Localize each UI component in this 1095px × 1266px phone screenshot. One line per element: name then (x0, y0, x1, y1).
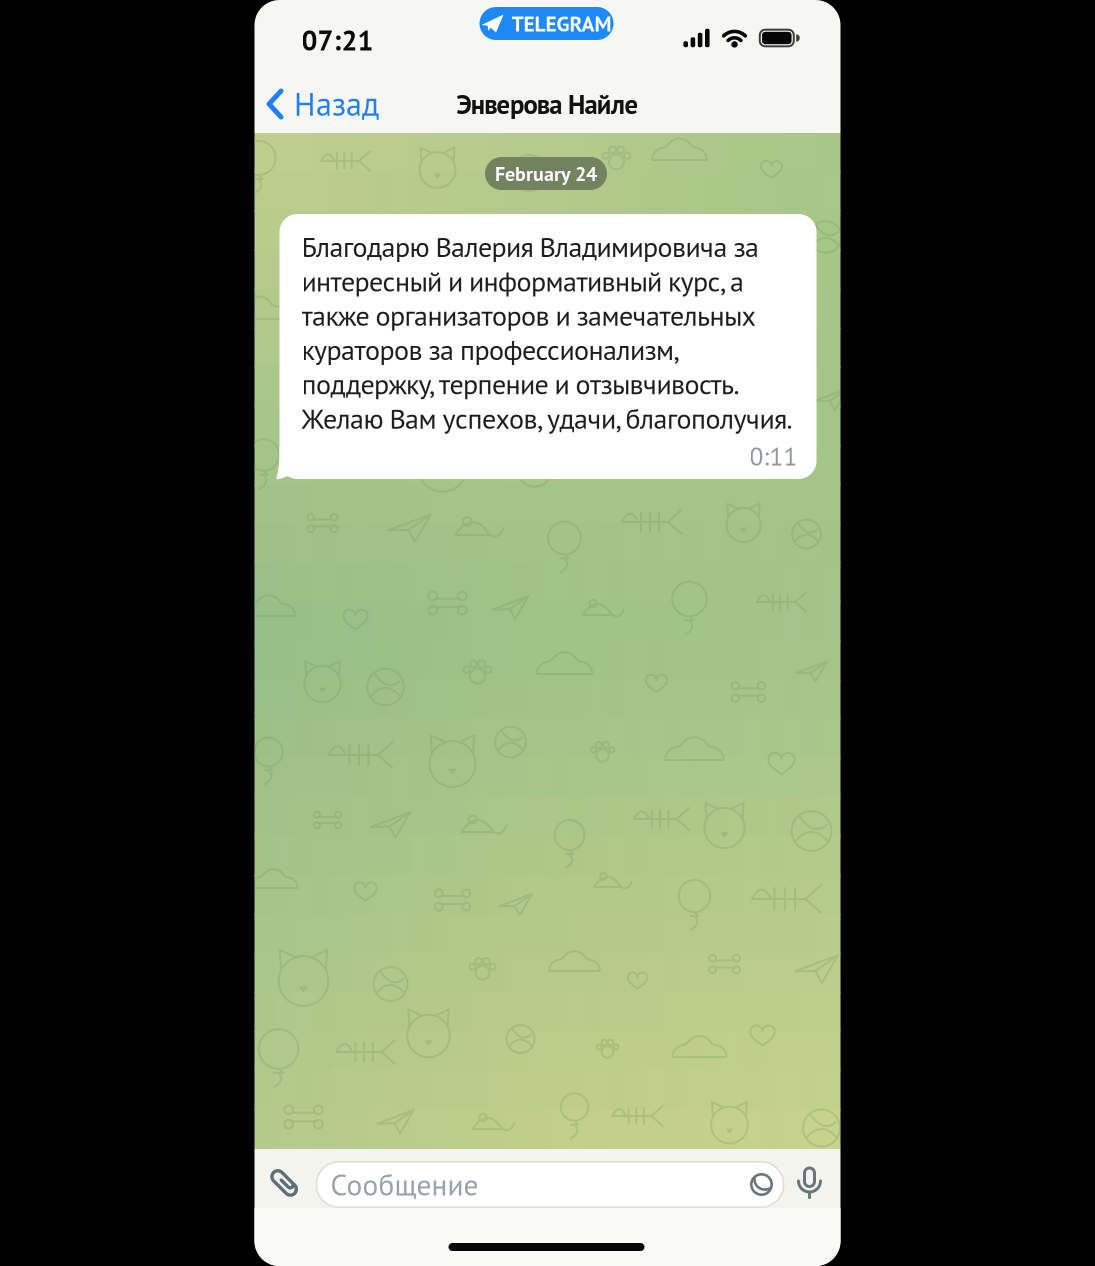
button[interactable]: February 24 (485, 157, 607, 190)
button[interactable]: Сообщение (315, 1161, 784, 1208)
staticText: 0:11 (749, 440, 797, 472)
staticText: Благодарю Валерия Владимировича за интер… (301, 229, 792, 436)
staticText: Сообщение (330, 1166, 478, 1203)
staticText: February 24 (495, 161, 597, 186)
button[interactable]: TELEGRAM (479, 7, 613, 40)
staticText: 07:21 (301, 22, 373, 58)
button[interactable] (269, 1168, 299, 1198)
button[interactable] (797, 1166, 821, 1197)
staticText: Назад (294, 84, 379, 124)
button[interactable]: Энверова Найле (456, 87, 639, 121)
staticText: TELEGRAM (511, 10, 611, 37)
staticText: Энверова Найле (456, 87, 639, 121)
button[interactable]: Назад (266, 84, 379, 124)
